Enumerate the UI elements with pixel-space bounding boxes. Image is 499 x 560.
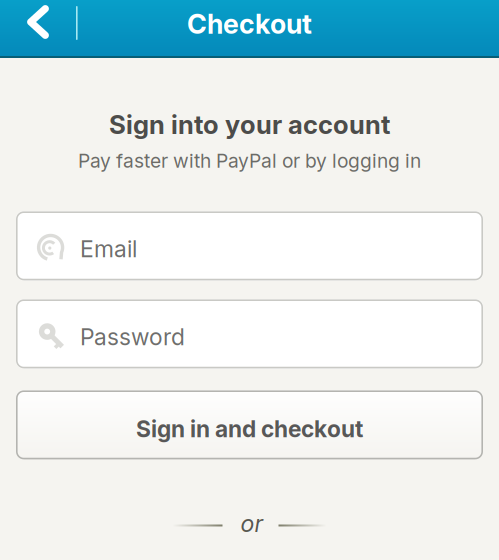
button[interactable]: Password — [16, 299, 483, 368]
button[interactable]: Email — [16, 211, 483, 280]
staticText: or — [240, 509, 263, 538]
staticText: Sign into your account — [109, 109, 390, 140]
button[interactable]: Back — [0, 0, 76, 56]
button[interactable]: Sign in and checkout — [16, 390, 483, 459]
staticText: Pay faster with PayPal or by logging in — [78, 149, 421, 172]
staticText: Email — [80, 235, 137, 263]
staticText: Password — [80, 323, 185, 351]
staticText: Checkout — [187, 8, 312, 40]
staticText: Sign in and checkout — [136, 415, 363, 443]
